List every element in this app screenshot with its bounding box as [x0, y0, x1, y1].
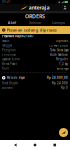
button[interactable]: Chat support: [59, 128, 68, 137]
staticText: Selesai: [29, 20, 41, 25]
staticText: 1,2 kg: [59, 62, 68, 66]
staticText: Berat Paket: [2, 62, 17, 66]
staticText: PESANAN #AJ8821047: [2, 34, 34, 38]
staticText: Rp 24.000: [52, 81, 68, 85]
staticText: Reguler: [56, 57, 68, 61]
staticText: 12 Mei 2024: [49, 44, 68, 47]
staticText: anteraja: [29, 4, 50, 11]
staticText: Total Ongkir: [2, 81, 18, 85]
staticText: Rp 24.000,00: [47, 76, 68, 79]
staticText: Pengirim: [2, 48, 15, 52]
staticText: Aktif: [8, 20, 16, 25]
staticText: Budi Santoso: [50, 53, 68, 56]
staticText: Layanan Kirim: [2, 57, 19, 61]
staticText: Pesanan sedang diproses: [7, 27, 57, 33]
staticText: Rp 0: [61, 86, 68, 89]
staticText: 09:41: [2, 0, 11, 4]
staticText: i: [3, 28, 4, 32]
button[interactable]: Back: [11, 140, 20, 150]
button[interactable]: i: [0, 26, 70, 34]
staticText: Toko Sinar Jaya: [50, 48, 68, 52]
staticText: Lainnya: [52, 20, 65, 25]
button[interactable]: Lainnya: [47, 19, 70, 26]
staticText: Tanggal: [2, 44, 12, 47]
button[interactable]: Account: [61, 4, 68, 11]
staticText: Diproses: [56, 39, 68, 43]
staticText: Anteraja: [57, 67, 68, 70]
staticText: Asuransi: [2, 86, 13, 89]
button[interactable]: Home: [30, 140, 39, 150]
staticText: Kurir: [2, 67, 9, 70]
staticText: Metode Bayar: [7, 76, 25, 79]
staticText: Status: [2, 39, 9, 43]
staticText: ORDERS: [25, 13, 45, 20]
staticText: Penerima: [2, 53, 15, 56]
button[interactable]: Recents: [50, 140, 59, 150]
button[interactable]: Aktif: [0, 19, 23, 26]
button[interactable]: Metode Bayar: [0, 75, 70, 81]
button[interactable]: Selesai: [23, 19, 47, 26]
